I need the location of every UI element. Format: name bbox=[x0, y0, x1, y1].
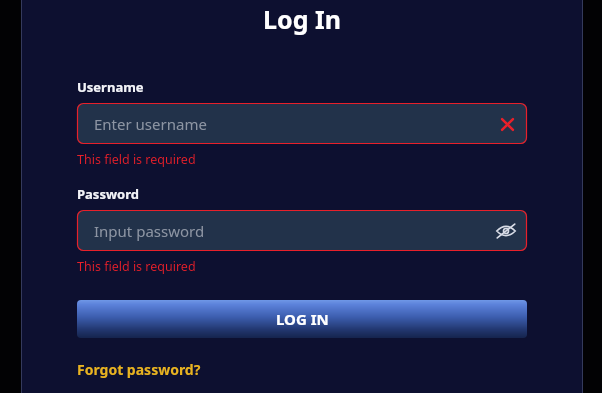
button[interactable]: LOG IN bbox=[77, 300, 527, 338]
staticText: This field is required bbox=[77, 258, 196, 275]
button[interactable]: Forgot password? bbox=[77, 360, 201, 379]
button[interactable]: Show password bbox=[491, 216, 521, 246]
staticText: Password bbox=[77, 185, 139, 203]
button[interactable]: Enter username bbox=[77, 103, 527, 144]
staticText: Forgot password? bbox=[77, 360, 201, 379]
staticText: This field is required bbox=[77, 151, 196, 168]
staticText: LOG IN bbox=[276, 309, 329, 329]
staticText: Log In bbox=[21, 2, 583, 36]
button[interactable]: Input password bbox=[77, 210, 527, 251]
button[interactable]: Clear username bbox=[493, 110, 521, 138]
staticText: Input password bbox=[94, 221, 205, 241]
staticText: Enter username bbox=[94, 114, 207, 134]
staticText: Username bbox=[77, 78, 144, 96]
